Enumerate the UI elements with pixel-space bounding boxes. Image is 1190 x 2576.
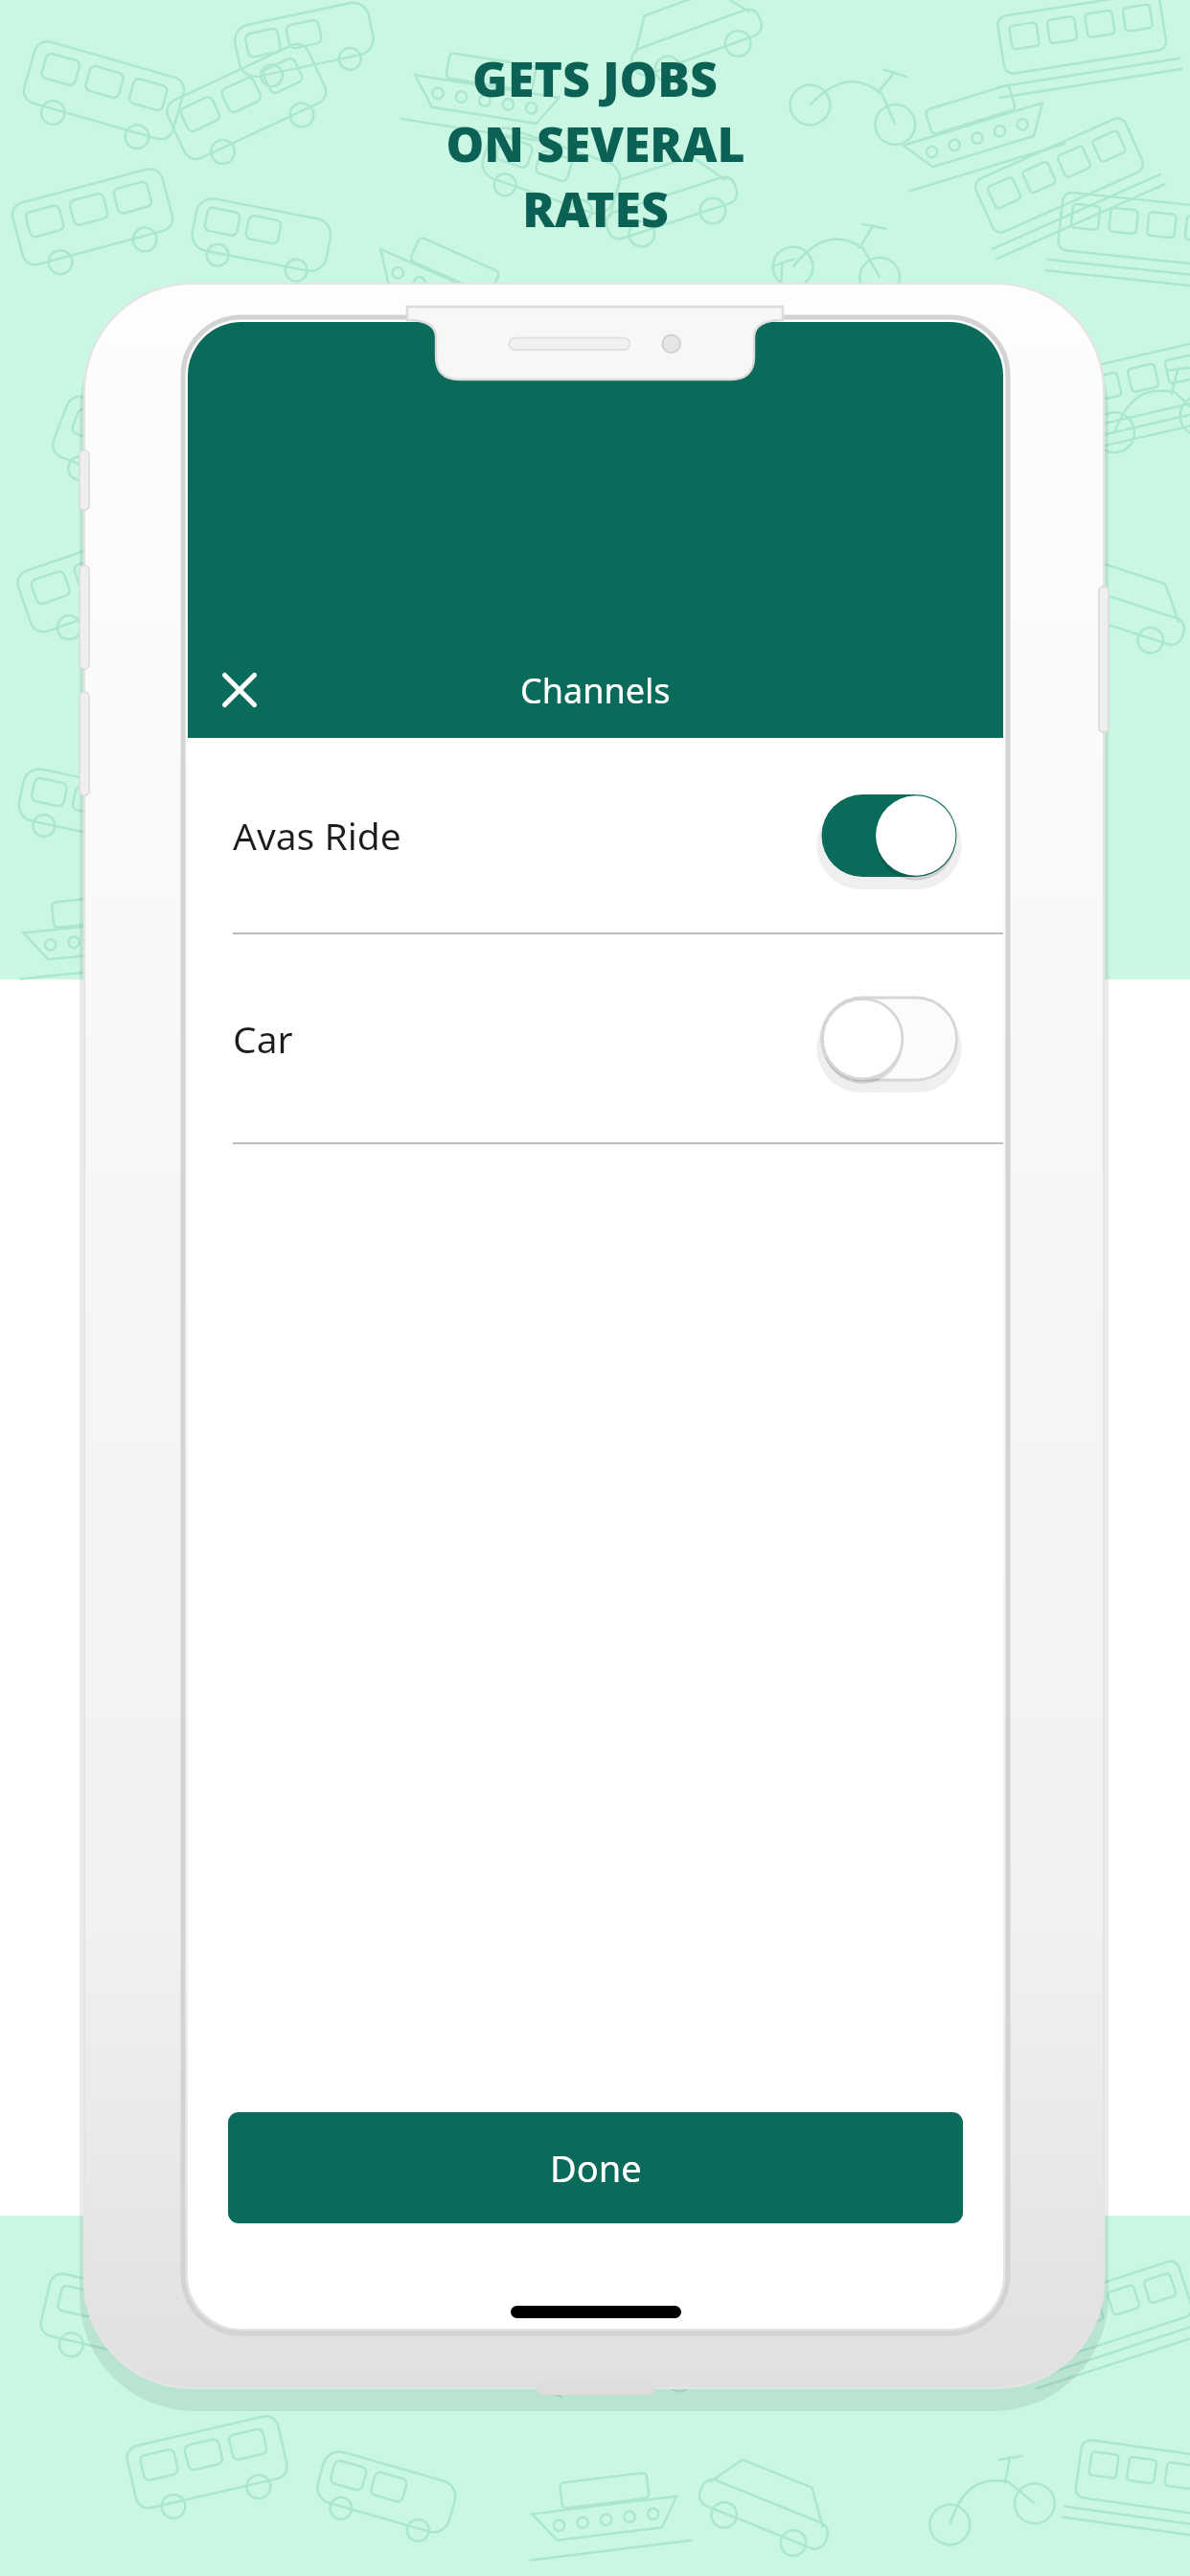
button[interactable]: Avas Ride	[188, 738, 1003, 932]
staticText: RATES	[522, 176, 669, 241]
staticText: Car	[233, 1013, 293, 1064]
button[interactable]: Enabled	[817, 788, 961, 884]
staticText: Avas Ride	[233, 810, 401, 861]
button[interactable]: Disabled	[817, 991, 961, 1087]
staticText: GETS JOBS	[472, 46, 718, 111]
button[interactable]: Car	[188, 934, 1003, 1142]
button[interactable]: Done	[228, 2112, 963, 2223]
staticText: Done	[550, 2143, 642, 2193]
button[interactable]: Close	[207, 657, 272, 723]
staticText: ON SEVERAL	[446, 111, 745, 176]
staticText: Channels	[520, 667, 671, 714]
